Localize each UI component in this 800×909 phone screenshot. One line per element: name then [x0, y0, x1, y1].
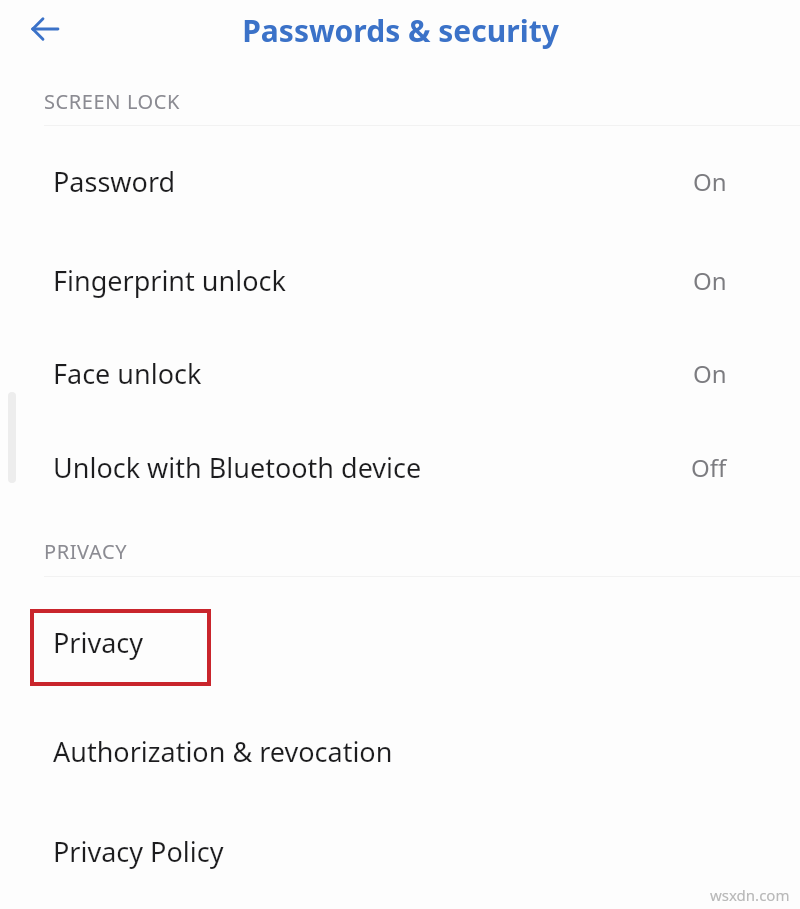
- staticText: Off: [691, 451, 727, 484]
- button[interactable]: Privacy Policy: [0, 805, 800, 898]
- staticText: Authorization & revocation: [53, 733, 393, 770]
- staticText: Privacy: [53, 624, 144, 661]
- staticText: Face unlock: [53, 355, 202, 392]
- staticText: wsxdn.com: [710, 885, 790, 905]
- staticText: Fingerprint unlock: [53, 262, 286, 299]
- staticText: Password: [53, 163, 176, 200]
- button[interactable]: Privacy: [0, 596, 800, 689]
- staticText: Privacy Policy: [53, 833, 224, 870]
- staticText: On: [693, 357, 727, 390]
- button[interactable]: Face unlock: [0, 327, 800, 420]
- staticText: Unlock with Bluetooth device: [53, 449, 422, 486]
- staticText: SCREEN LOCK: [44, 88, 181, 115]
- staticText: Passwords & security: [242, 10, 559, 51]
- button[interactable]: Authorization & revocation: [0, 705, 800, 798]
- button[interactable]: Back: [14, 0, 76, 58]
- staticText: PRIVACY: [44, 538, 128, 565]
- button[interactable]: Password: [0, 135, 800, 228]
- button[interactable]: Unlock with Bluetooth device: [0, 421, 800, 514]
- button[interactable]: Fingerprint unlock: [0, 234, 800, 327]
- staticText: On: [693, 165, 727, 198]
- staticText: On: [693, 264, 727, 297]
